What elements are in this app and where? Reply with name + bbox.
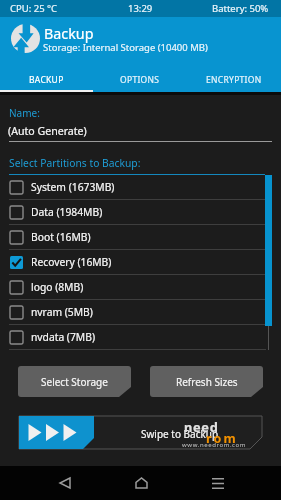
button[interactable]: Refresh Sizes [150, 366, 263, 397]
staticText: rom [206, 430, 238, 447]
staticText: OPTIONS [120, 74, 160, 86]
button[interactable]: Recovery (16MB) [0, 250, 281, 274]
button[interactable]: logo (8MB) [0, 275, 281, 299]
staticText: 13:29 [128, 2, 153, 15]
button[interactable]: nvdata (7MB) [0, 325, 281, 349]
staticText: nvdata (7MB) [31, 330, 95, 344]
staticText: Recovery (16MB) [31, 255, 112, 269]
staticText: Name: [9, 106, 40, 120]
staticText: Battery: 50% [212, 2, 269, 15]
button[interactable]: Select Storage [18, 366, 131, 397]
staticText: BACKUP [29, 74, 64, 86]
button[interactable]: ENCRYPTION [187, 69, 281, 92]
staticText: www.needrom.com [182, 441, 247, 449]
staticText: Backup [44, 24, 94, 43]
staticText: Refresh Sizes [176, 375, 238, 389]
staticText: Data (1984MB) [31, 205, 103, 219]
staticText: logo (8MB) [31, 280, 84, 294]
button[interactable]: Data (1984MB) [0, 200, 281, 224]
button[interactable]: System (1673MB) [0, 175, 281, 199]
staticText: Swipe to Backup [141, 427, 219, 441]
staticText: Select Partitions to Backup: [9, 156, 141, 170]
button[interactable]: Boot (16MB) [0, 225, 281, 249]
staticText: nvram (5MB) [31, 305, 93, 319]
staticText: System (1673MB) [31, 180, 115, 194]
button[interactable]: nvram (5MB) [0, 300, 281, 324]
staticText: need [184, 418, 219, 435]
staticText: ENCRYPTION [206, 74, 262, 86]
staticText: Boot (16MB) [31, 230, 91, 244]
button[interactable]: Recent apps [201, 466, 235, 500]
staticText: (Auto Generate) [8, 124, 87, 138]
staticText: CPU: 25 °C [10, 2, 58, 15]
staticText: Select Storage [41, 375, 108, 389]
button[interactable]: OPTIONS [93, 69, 187, 92]
button[interactable]: Home [124, 466, 158, 500]
button[interactable]: BACKUP [0, 69, 93, 92]
staticText: Storage: Internal Storage (10400 MB) [43, 41, 208, 54]
button[interactable]: Back [47, 466, 81, 500]
button[interactable]: Swipe to Backup [19, 416, 262, 449]
